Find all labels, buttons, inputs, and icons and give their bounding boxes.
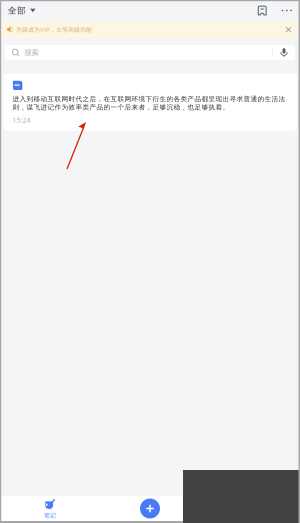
button[interactable]: Notes (253, 0, 272, 21)
staticText: 全部 (8, 5, 26, 16)
button[interactable]: More (272, 0, 300, 21)
button[interactable]: 进入到移动互联网时代之后，在互联网环境下衍生的各类产品都呈现出寻求普通的生活法则… (3, 73, 297, 131)
button[interactable]: Close banner (278, 23, 291, 36)
staticText: 笔记 (44, 512, 56, 519)
button[interactable]: 全部 (0, 0, 42, 21)
button[interactable]: Voice search (273, 48, 295, 57)
staticText: 搜索 (24, 48, 38, 57)
staticText: 15:24 (12, 116, 30, 125)
staticText: 进入到移动互联网时代之后，在互联网环境下衍生的各类产品都呈现出寻求普通的生活法则… (12, 95, 285, 112)
staticText: 升级成为VIP，立享高级功能 (16, 25, 92, 33)
button[interactable]: 笔记 (0, 496, 100, 521)
button[interactable]: 我的 (200, 496, 300, 521)
button[interactable]: New note (100, 496, 200, 521)
